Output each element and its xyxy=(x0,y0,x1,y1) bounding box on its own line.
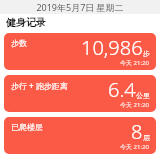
staticText: 6.4 xyxy=(108,76,136,103)
button[interactable]: 步行 + 跑步距离 xyxy=(4,75,156,112)
button[interactable]: 已爬楼层 xyxy=(4,117,156,154)
staticText: 步行 + 跑步距离 xyxy=(11,80,68,91)
staticText: 10,986 xyxy=(81,34,143,61)
staticText: 层 xyxy=(143,133,150,142)
staticText: 健身记录 xyxy=(6,16,46,29)
button[interactable]: 步数 xyxy=(4,33,156,70)
staticText: 今天 21:20 xyxy=(120,143,149,151)
staticText: 8 xyxy=(131,118,143,145)
staticText: 今天 21:20 xyxy=(120,59,149,67)
staticText: 已爬楼层 xyxy=(11,122,43,132)
staticText: 步 xyxy=(143,49,150,58)
staticText: 2019年5月7日 星期二 xyxy=(36,1,124,13)
staticText: 公里 xyxy=(136,91,150,100)
staticText: 步数 xyxy=(11,38,27,48)
staticText: 今天 21:20 xyxy=(120,101,149,109)
